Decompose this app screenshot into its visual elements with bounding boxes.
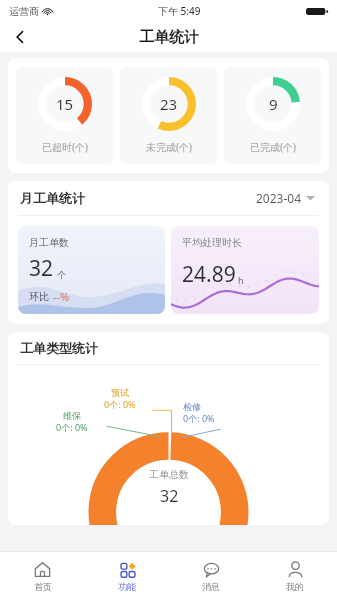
staticText: 32 bbox=[160, 485, 179, 507]
staticText: 24.89 bbox=[182, 260, 236, 289]
staticText: 平均处理时长 bbox=[182, 236, 242, 249]
staticText: 月工单统计 bbox=[20, 190, 85, 206]
button[interactable]: 15 bbox=[16, 67, 113, 164]
button[interactable]: 我的 bbox=[253, 552, 337, 600]
button[interactable]: 9 bbox=[224, 67, 321, 164]
staticText: 功能 bbox=[118, 581, 136, 592]
button[interactable]: 平均处理时长 bbox=[171, 226, 319, 314]
staticText: 工单统计 bbox=[139, 28, 199, 47]
staticText: 32 bbox=[29, 254, 54, 283]
button[interactable]: 23 bbox=[120, 67, 217, 164]
staticText: 维保 bbox=[63, 410, 81, 421]
button[interactable]: 功能 bbox=[85, 552, 169, 600]
staticText: 预试 bbox=[111, 387, 129, 398]
staticText: 工单总数 bbox=[149, 468, 189, 481]
staticText: h bbox=[238, 274, 244, 286]
staticText: 运营商 bbox=[9, 5, 39, 18]
staticText: 23 bbox=[160, 94, 178, 114]
staticText: 检修 bbox=[183, 401, 201, 412]
staticText: 0个: 0% bbox=[104, 398, 136, 410]
button[interactable]: Back bbox=[4, 22, 36, 52]
staticText: 15 bbox=[56, 94, 74, 114]
staticText: 未完成(个) bbox=[146, 140, 192, 154]
staticText: 工单类型统计 bbox=[20, 340, 98, 356]
staticText: 0个: 0% bbox=[56, 421, 88, 433]
staticText: 下午 5:49 bbox=[158, 4, 201, 18]
staticText: 首页 bbox=[34, 581, 52, 592]
button[interactable]: 首页 bbox=[0, 552, 85, 600]
staticText: 环比 bbox=[29, 290, 49, 303]
staticText: 个 bbox=[57, 269, 66, 280]
staticText: 消息 bbox=[202, 581, 220, 592]
staticText: 9 bbox=[269, 94, 278, 114]
staticText: 已超时(个) bbox=[42, 140, 88, 154]
button[interactable]: 消息 bbox=[169, 552, 253, 600]
staticText: 月工单数 bbox=[29, 236, 69, 249]
staticText: 我的 bbox=[286, 581, 304, 592]
button[interactable]: 月工单数 bbox=[18, 226, 165, 314]
staticText: 已完成(个) bbox=[250, 140, 296, 154]
button[interactable]: 2023-04 bbox=[254, 186, 317, 210]
staticText: 2023-04 bbox=[256, 190, 302, 206]
staticText: --% bbox=[53, 289, 70, 304]
staticText: 0个: 0% bbox=[183, 412, 215, 424]
